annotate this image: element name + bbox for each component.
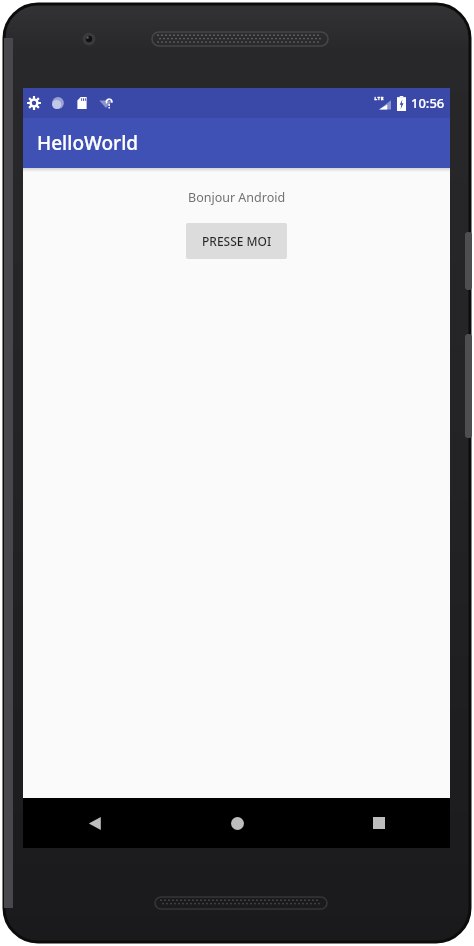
staticText: PRESSE MOI: [202, 233, 272, 249]
staticText: Bonjour Android: [188, 189, 286, 206]
staticText: 10:56: [411, 94, 445, 112]
button[interactable]: Back: [23, 798, 166, 848]
staticText: HelloWorld: [37, 130, 139, 156]
button[interactable]: PRESSE MOI: [186, 223, 287, 259]
button[interactable]: Home: [166, 798, 308, 848]
button[interactable]: Recent apps: [308, 798, 450, 848]
